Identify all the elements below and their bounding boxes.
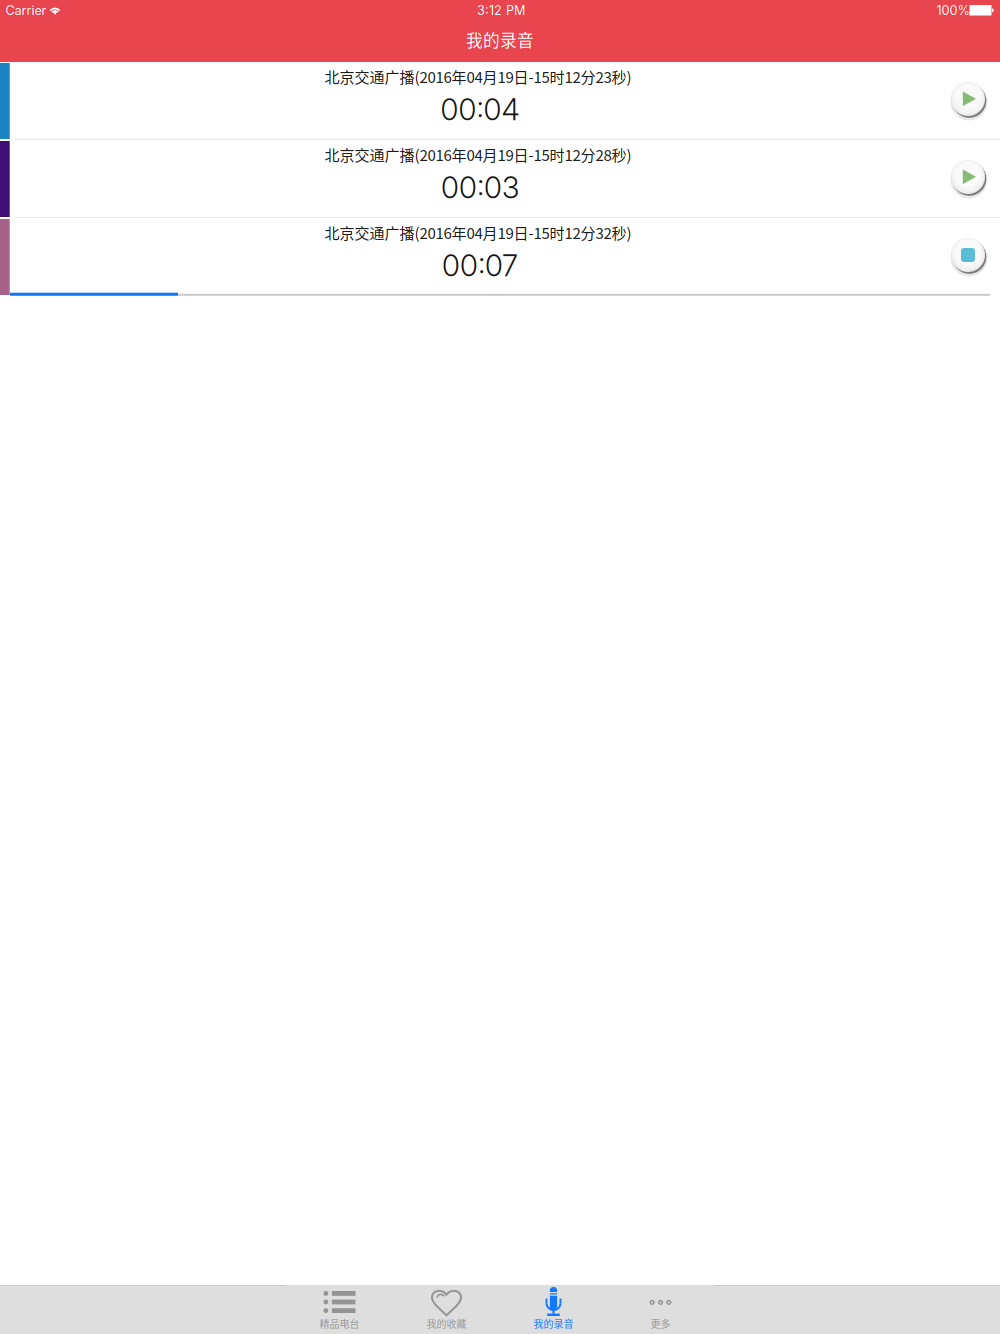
staticText: 北京交通广播(2016年04月19日-15时12分32秒)	[324, 222, 631, 243]
button[interactable]: 北京交通广播(2016年04月19日-15时12分32秒)	[0, 218, 1000, 296]
button[interactable]: Stop	[946, 233, 990, 277]
staticText: 我的收藏	[426, 1316, 466, 1331]
button[interactable]: 我的录音	[500, 1285, 607, 1334]
button[interactable]: 北京交通广播(2016年04月19日-15时12分23秒)	[0, 62, 1000, 140]
staticText: 00:04	[440, 92, 519, 127]
button[interactable]: Play	[946, 155, 990, 199]
staticText: 北京交通广播(2016年04月19日-15时12分23秒)	[324, 66, 631, 87]
staticText: 精品电台	[319, 1316, 359, 1331]
staticText: 北京交通广播(2016年04月19日-15时12分28秒)	[324, 144, 631, 165]
staticText: 我的录音	[466, 27, 534, 51]
button[interactable]: 北京交通广播(2016年04月19日-15时12分28秒)	[0, 140, 1000, 218]
staticText: Carrier	[5, 3, 46, 18]
button[interactable]: 我的收藏	[393, 1285, 500, 1334]
staticText: 100%	[936, 3, 969, 18]
staticText: 更多	[650, 1316, 670, 1331]
staticText: 我的录音	[533, 1316, 573, 1331]
button[interactable]: Play	[946, 77, 990, 121]
staticText: 00:07	[442, 248, 518, 283]
button[interactable]: 更多	[607, 1285, 714, 1334]
staticText: 3:12 PM	[477, 3, 525, 18]
button[interactable]: 精品电台	[286, 1285, 393, 1334]
staticText: 00:03	[441, 170, 519, 205]
